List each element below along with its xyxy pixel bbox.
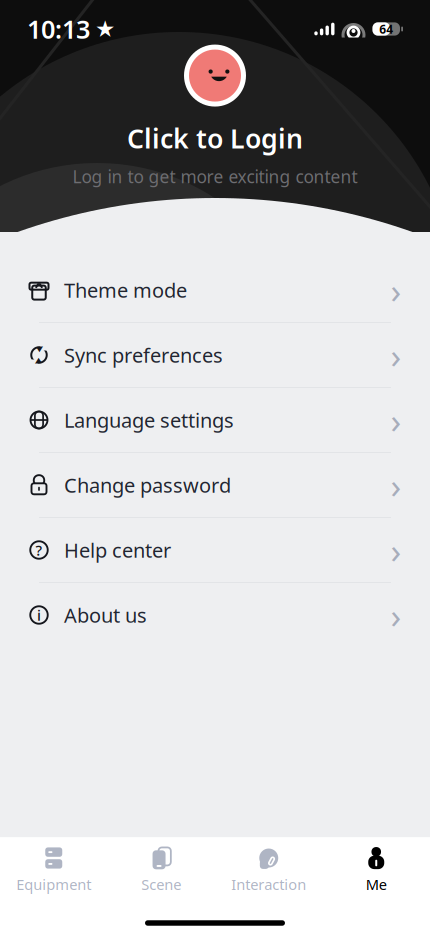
staticText: Help center xyxy=(64,537,171,563)
staticText: ★ xyxy=(95,16,115,42)
staticText: Theme mode xyxy=(64,277,187,303)
button[interactable]: Scene xyxy=(107,837,215,898)
staticText: Log in to get more exciting content xyxy=(72,165,357,188)
button[interactable]: Theme mode xyxy=(0,258,430,322)
staticText: Change password xyxy=(64,472,231,498)
button[interactable]: Change password xyxy=(0,453,430,517)
staticText: › xyxy=(390,592,401,638)
staticText: Scene xyxy=(141,874,181,894)
staticText: Sync preferences xyxy=(64,342,223,368)
staticText: ▲ xyxy=(38,343,44,352)
staticText: › xyxy=(390,527,401,573)
button[interactable]: ? xyxy=(0,518,430,582)
button[interactable]: Me xyxy=(322,837,430,898)
button[interactable]: Click to Login xyxy=(0,45,430,188)
staticText: 10:13 xyxy=(27,12,90,46)
staticText: › xyxy=(390,332,401,378)
button[interactable]: Interaction xyxy=(215,837,322,898)
button[interactable]: Equipment xyxy=(0,837,107,898)
staticText: ▲ xyxy=(34,358,40,367)
button[interactable]: Language settings xyxy=(0,388,430,452)
staticText: i xyxy=(37,605,41,625)
staticText: › xyxy=(390,267,401,313)
staticText: About us xyxy=(64,602,147,628)
button[interactable]: ▲ xyxy=(0,323,430,387)
staticText: Interaction xyxy=(231,874,306,894)
staticText: Me xyxy=(366,874,387,894)
staticText: Equipment xyxy=(16,874,91,894)
staticText: Language settings xyxy=(64,407,234,433)
staticText: Click to Login xyxy=(127,121,303,156)
staticText: ? xyxy=(35,540,42,560)
button[interactable]: i xyxy=(0,583,430,647)
staticText: 64 xyxy=(379,21,393,37)
staticText: › xyxy=(390,462,401,508)
staticText: › xyxy=(390,397,401,443)
